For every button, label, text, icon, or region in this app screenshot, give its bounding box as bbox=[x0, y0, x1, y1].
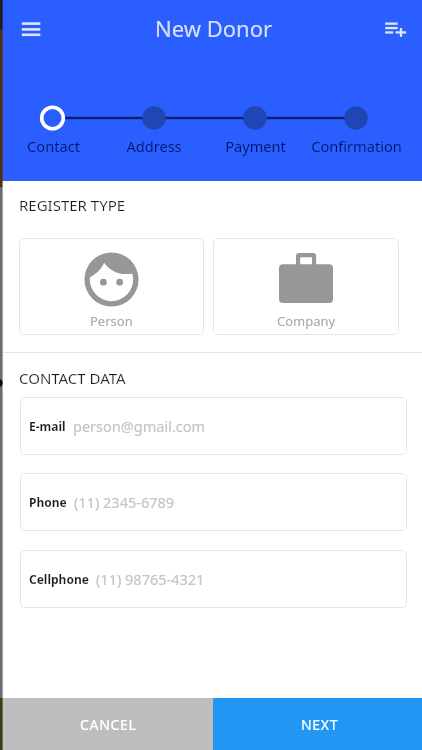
button[interactable]: Menu bbox=[9, 7, 53, 51]
staticText: Phone bbox=[29, 494, 67, 510]
staticText: Address bbox=[126, 136, 182, 156]
staticText: Payment bbox=[225, 136, 286, 156]
button[interactable]: E-mail bbox=[20, 397, 407, 455]
button[interactable]: Add to list bbox=[375, 8, 417, 50]
staticText: Company bbox=[277, 312, 336, 330]
staticText: (11) 98765-4321 bbox=[96, 569, 205, 589]
button[interactable]: Person bbox=[19, 238, 204, 335]
staticText: Person bbox=[90, 312, 133, 330]
staticText: person@gmail.com bbox=[73, 416, 206, 436]
staticText: (11) 2345-6789 bbox=[74, 492, 175, 512]
staticText: E-mail bbox=[29, 418, 66, 434]
staticText: CANCEL bbox=[80, 715, 137, 734]
staticText: NEXT bbox=[301, 715, 339, 734]
staticText: Cellphone bbox=[29, 571, 89, 587]
button[interactable]: Cellphone bbox=[20, 550, 407, 608]
staticText: Contact bbox=[27, 136, 80, 156]
button[interactable]: NEXT bbox=[213, 698, 422, 750]
staticText: REGISTER TYPE bbox=[19, 195, 126, 215]
staticText: Confirmation bbox=[311, 136, 402, 156]
button[interactable]: Company bbox=[213, 238, 399, 335]
staticText: CONTACT DATA bbox=[19, 368, 126, 388]
button[interactable]: Phone bbox=[20, 473, 407, 531]
staticText: New Donor bbox=[155, 13, 273, 43]
button[interactable]: CANCEL bbox=[0, 698, 213, 750]
